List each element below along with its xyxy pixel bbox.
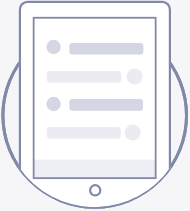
button[interactable]: Tablet illustration xyxy=(0,0,190,211)
